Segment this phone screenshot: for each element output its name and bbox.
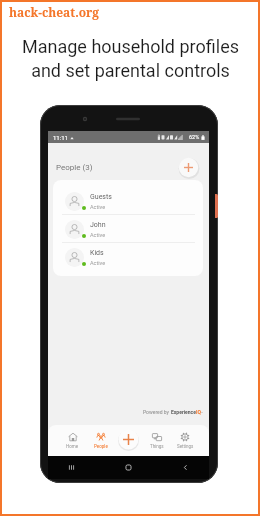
- button[interactable]: Add: [118, 429, 139, 450]
- other: Recent apps: [68, 464, 75, 471]
- button[interactable]: Things: [143, 425, 171, 456]
- staticText: 62%: [189, 134, 200, 140]
- button[interactable]: Settings: [171, 425, 199, 456]
- staticText: ™: [201, 411, 203, 415]
- staticText: Things: [150, 444, 164, 449]
- staticText: Powered by: [143, 409, 171, 415]
- staticText: and set parental controls: [31, 60, 230, 81]
- staticText: Active: [90, 260, 106, 266]
- button[interactable]: John: [53, 215, 203, 243]
- button[interactable]: Home: [58, 425, 87, 456]
- staticText: Active: [90, 204, 106, 210]
- staticText: John: [90, 221, 106, 229]
- staticText: Active: [90, 232, 106, 238]
- staticText: IQ: [196, 409, 201, 415]
- button[interactable]: Add person: [178, 157, 199, 178]
- staticText: People: [94, 444, 108, 449]
- staticText: Settings: [177, 444, 194, 449]
- button[interactable]: Guests: [53, 187, 203, 215]
- other: Back: [182, 464, 189, 471]
- staticText: hack-cheat.org: [9, 4, 100, 20]
- staticText: Home: [66, 444, 79, 449]
- other: Home: [125, 464, 132, 471]
- staticText: Manage household profiles: [22, 36, 239, 57]
- staticText: Experience: [171, 409, 196, 415]
- staticText: Guests: [90, 193, 112, 201]
- button[interactable]: People: [87, 425, 115, 456]
- staticText: Kids: [90, 249, 104, 257]
- staticText: 11:11: [53, 134, 68, 141]
- staticText: People (3): [56, 163, 93, 172]
- button[interactable]: Kids: [53, 243, 203, 271]
